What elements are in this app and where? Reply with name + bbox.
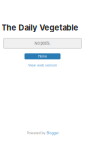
staticText: Powered by <box>26 131 45 135</box>
button[interactable]: View web version <box>28 63 57 67</box>
button[interactable]: Home <box>24 53 60 59</box>
button[interactable]: Blogger <box>46 131 58 135</box>
staticText: View web version <box>28 63 57 67</box>
staticText: Blogger <box>46 131 58 135</box>
staticText: The Daily Vegetable <box>1 23 78 32</box>
staticText: Home <box>38 54 47 58</box>
staticText: No posts. <box>34 41 50 46</box>
